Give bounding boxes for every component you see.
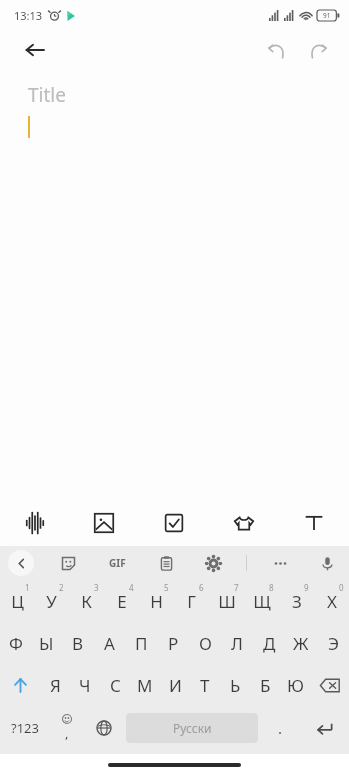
button[interactable]: Щ [244,580,279,622]
staticText: Д [263,632,276,655]
button[interactable]: Я [40,664,70,706]
staticText: У [46,590,57,613]
button[interactable]: Ш [209,580,244,622]
staticText: Э [328,632,339,655]
staticText: З [292,590,302,613]
button[interactable]: А [93,622,125,664]
button[interactable]: Record audio [0,500,69,546]
staticText: 7 [234,582,239,593]
button[interactable]: More options [266,549,294,577]
button[interactable]: Settings [199,549,227,577]
button[interactable]: И [160,664,190,706]
button[interactable]: Н [139,580,174,622]
staticText: 5 [164,582,169,593]
staticText: Н [150,590,163,613]
staticText: 9 [304,582,309,593]
staticText: Русски [173,720,212,736]
button[interactable]: ?123 [0,706,49,750]
staticText: Я [50,674,61,697]
button[interactable]: М [130,664,160,706]
button[interactable]: Э [317,622,349,664]
staticText: ?123 [11,719,39,737]
staticText: Ц [11,590,24,613]
button[interactable]: Backspace [310,664,349,706]
button[interactable]: Drawing [209,500,279,546]
staticText: 8 [269,582,274,593]
button[interactable]: Text format [279,500,349,546]
button[interactable]: Enter [299,706,349,750]
button[interactable]: Ю [280,664,310,706]
staticText: 3 [94,582,99,593]
button[interactable]: Ы [31,622,62,664]
button[interactable]: GIF [101,547,133,579]
button[interactable]: Expand toolbar [8,550,34,576]
staticText: К [81,590,92,613]
staticText: Ы [39,632,54,655]
staticText: 6 [199,582,204,593]
staticText: Ф [9,632,23,655]
staticText: Ь [230,674,241,697]
staticText: 4 [129,582,134,593]
staticText: . [278,718,283,738]
button[interactable]: Т [190,664,220,706]
staticText: 2 [59,582,64,593]
staticText: Title [28,82,66,108]
staticText: Т [200,674,210,697]
button[interactable]: Add image [69,500,139,546]
staticText: , [65,724,69,742]
button[interactable]: Д [253,622,285,664]
button[interactable]: П [125,622,157,664]
button[interactable]: Checklist [139,500,209,546]
button[interactable]: Back [18,33,52,67]
staticText: Х [327,590,337,613]
staticText: Ж [293,632,309,655]
staticText: И [169,674,182,697]
staticText: Ш [218,590,236,613]
button[interactable]: У [34,580,69,622]
staticText: Б [260,674,271,697]
button[interactable]: О [189,622,221,664]
staticText: 1 [25,582,30,593]
button[interactable]: Ь [220,664,250,706]
button[interactable]: Stickers [54,549,82,577]
staticText: 13:13 [14,8,43,23]
staticText: 91 [323,11,331,20]
button[interactable]: Р [157,622,189,664]
staticText: С [110,674,121,697]
staticText: 0 [339,582,344,593]
button[interactable]: Change language [85,706,122,750]
button[interactable]: Г [174,580,209,622]
staticText: Е [117,590,127,613]
button[interactable]: К [69,580,104,622]
button[interactable]: Shift [0,664,40,706]
button[interactable]: С [100,664,130,706]
staticText: М [137,674,153,697]
button[interactable]: Е [104,580,139,622]
staticText: Щ [253,590,271,613]
button[interactable]: Ц [0,580,34,622]
button[interactable]: З [279,580,314,622]
staticText: Ю [287,674,304,697]
button[interactable]: Voice input [313,549,341,577]
button[interactable]: Emoji and comma [49,706,85,750]
button[interactable]: Redo [301,33,335,67]
button[interactable]: Х [314,580,349,622]
staticText: О [199,632,212,655]
button[interactable]: В [62,622,93,664]
staticText: П [135,632,148,655]
staticText: Ч [79,674,91,697]
button[interactable]: Ж [285,622,317,664]
button[interactable]: Русски [126,713,258,743]
button[interactable]: Undo [259,33,293,67]
button[interactable]: Clipboard [152,549,180,577]
staticText: Л [231,632,243,655]
staticText: В [72,632,84,655]
button[interactable]: Ф [0,622,31,664]
button[interactable]: Л [221,622,253,664]
staticText: GIF [109,556,126,570]
staticText: Г [187,590,196,613]
button[interactable]: . [262,706,299,750]
button[interactable]: Б [250,664,280,706]
button[interactable]: Ч [70,664,100,706]
staticText: А [104,632,115,655]
